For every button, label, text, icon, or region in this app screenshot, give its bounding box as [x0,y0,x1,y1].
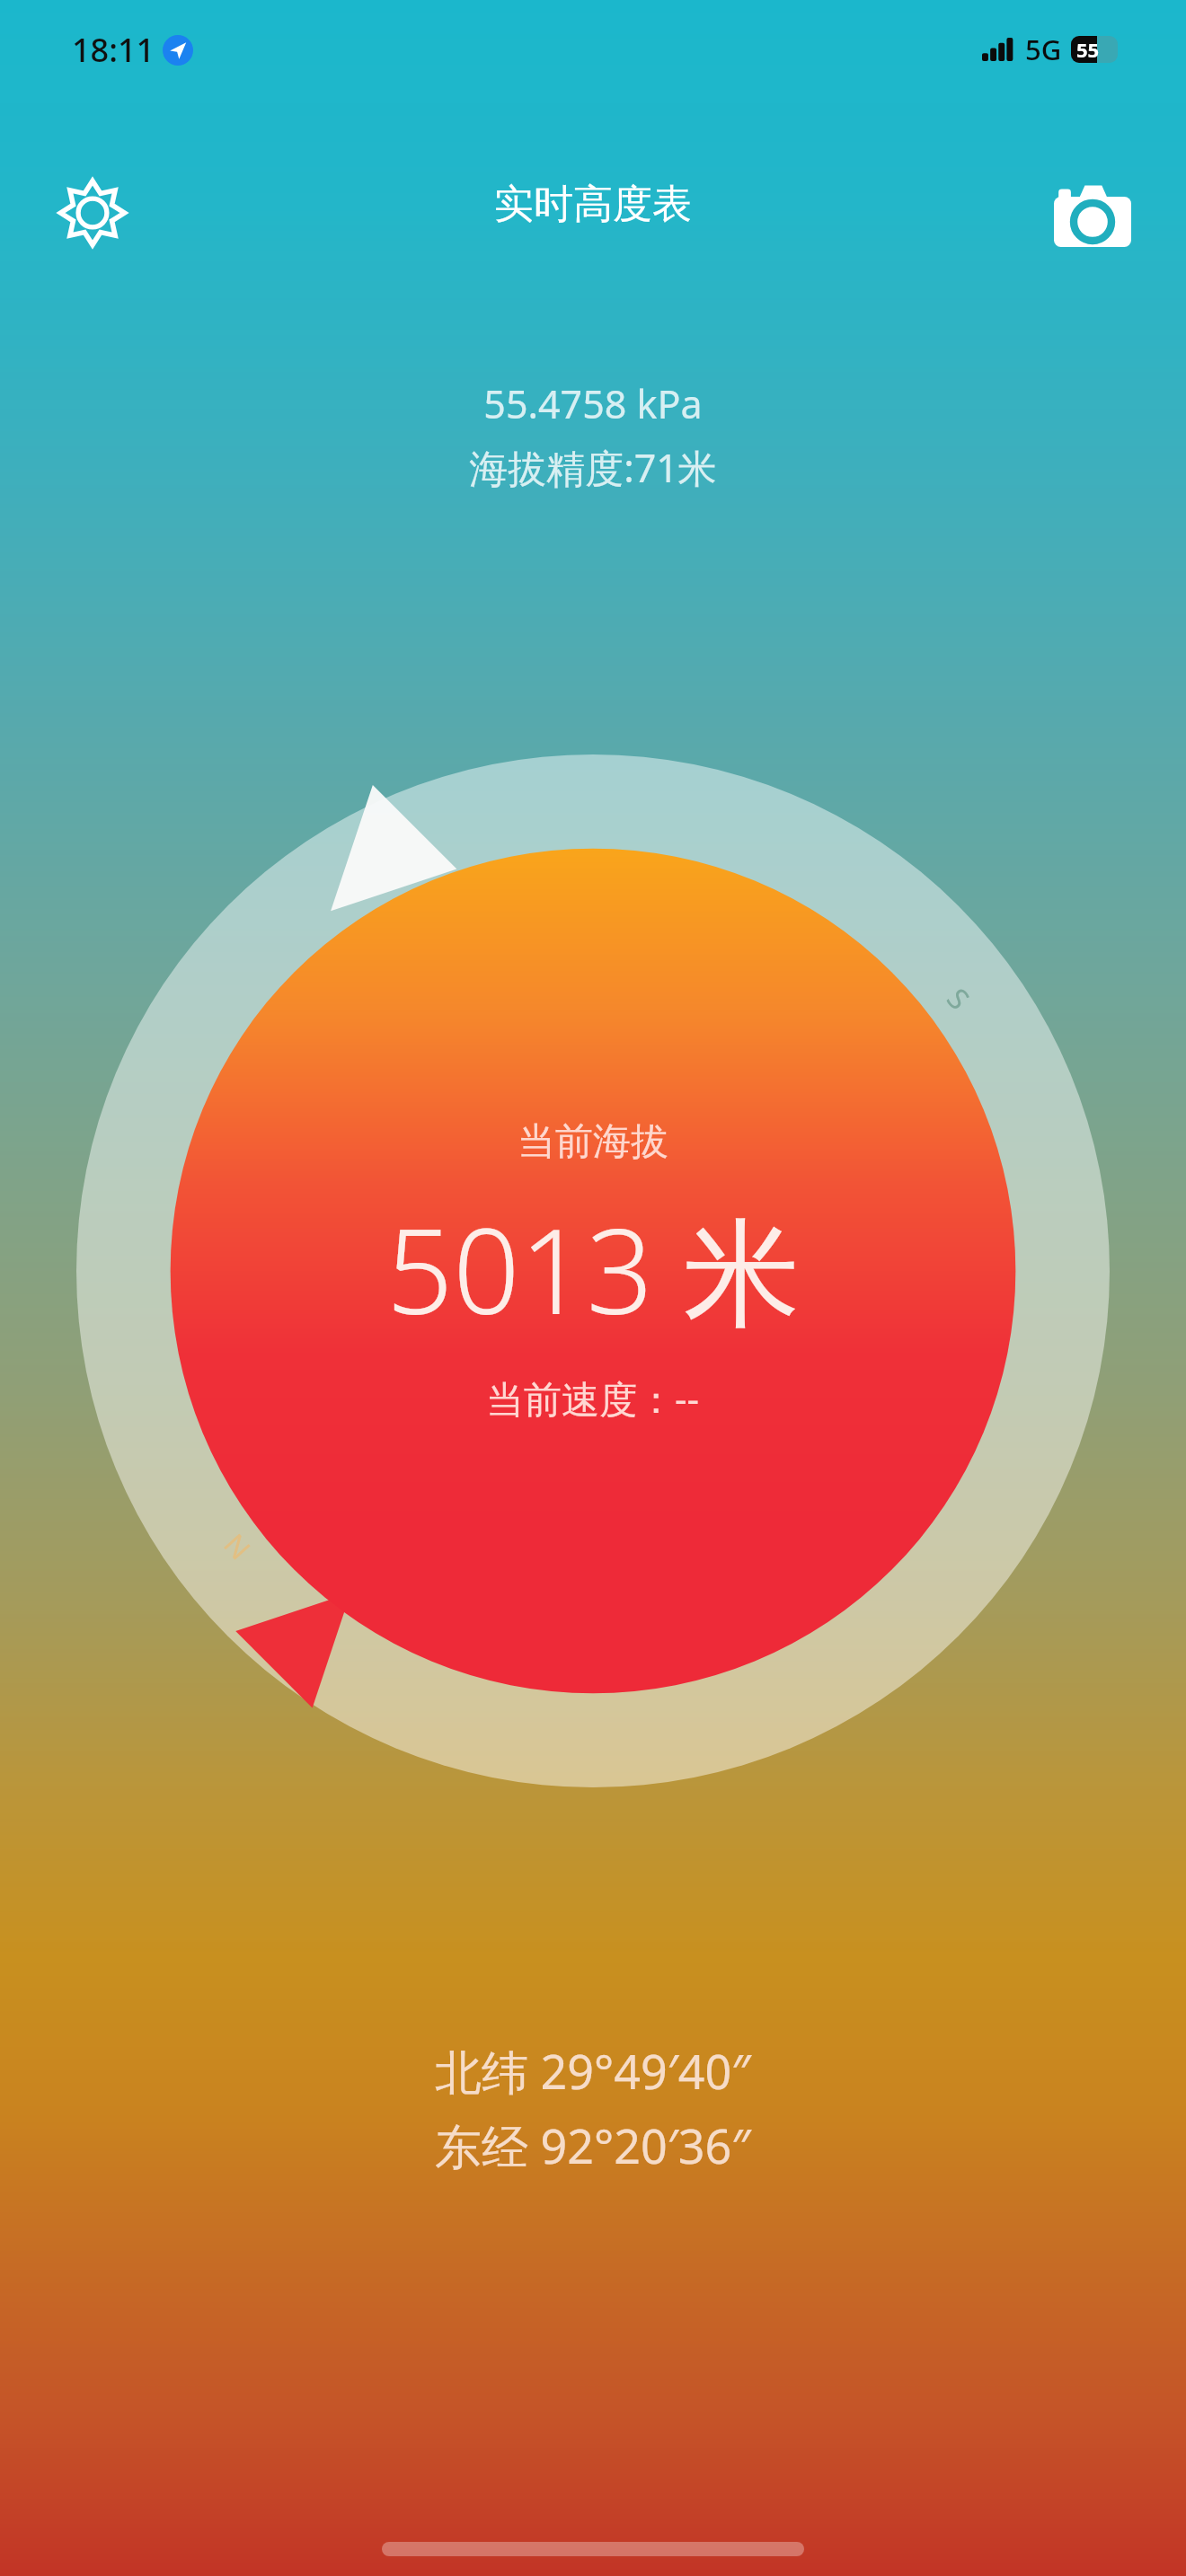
staticText: 海拔精度:71米 [469,441,717,494]
staticText: 东经 92°20′36″ [435,2113,751,2177]
staticText: 5013 米 [386,1189,801,1349]
staticText: 55.4758 kPa [483,377,703,430]
staticText: 55 [1076,36,1100,63]
button[interactable]: Altitude dial [76,754,1110,1787]
button[interactable]: Settings [50,171,135,255]
button[interactable]: Camera [1049,172,1136,259]
staticText: 18:11 [72,28,155,72]
staticText: 5G [1025,31,1062,68]
staticText: 实时高度表 [494,180,692,229]
staticText: 当前海拔 [518,1118,668,1166]
staticText: 北纬 29°49′40″ [435,2039,751,2103]
staticText: S [939,980,979,1018]
staticText: 当前速度：-- [486,1372,700,1424]
staticText: N [215,1525,260,1568]
